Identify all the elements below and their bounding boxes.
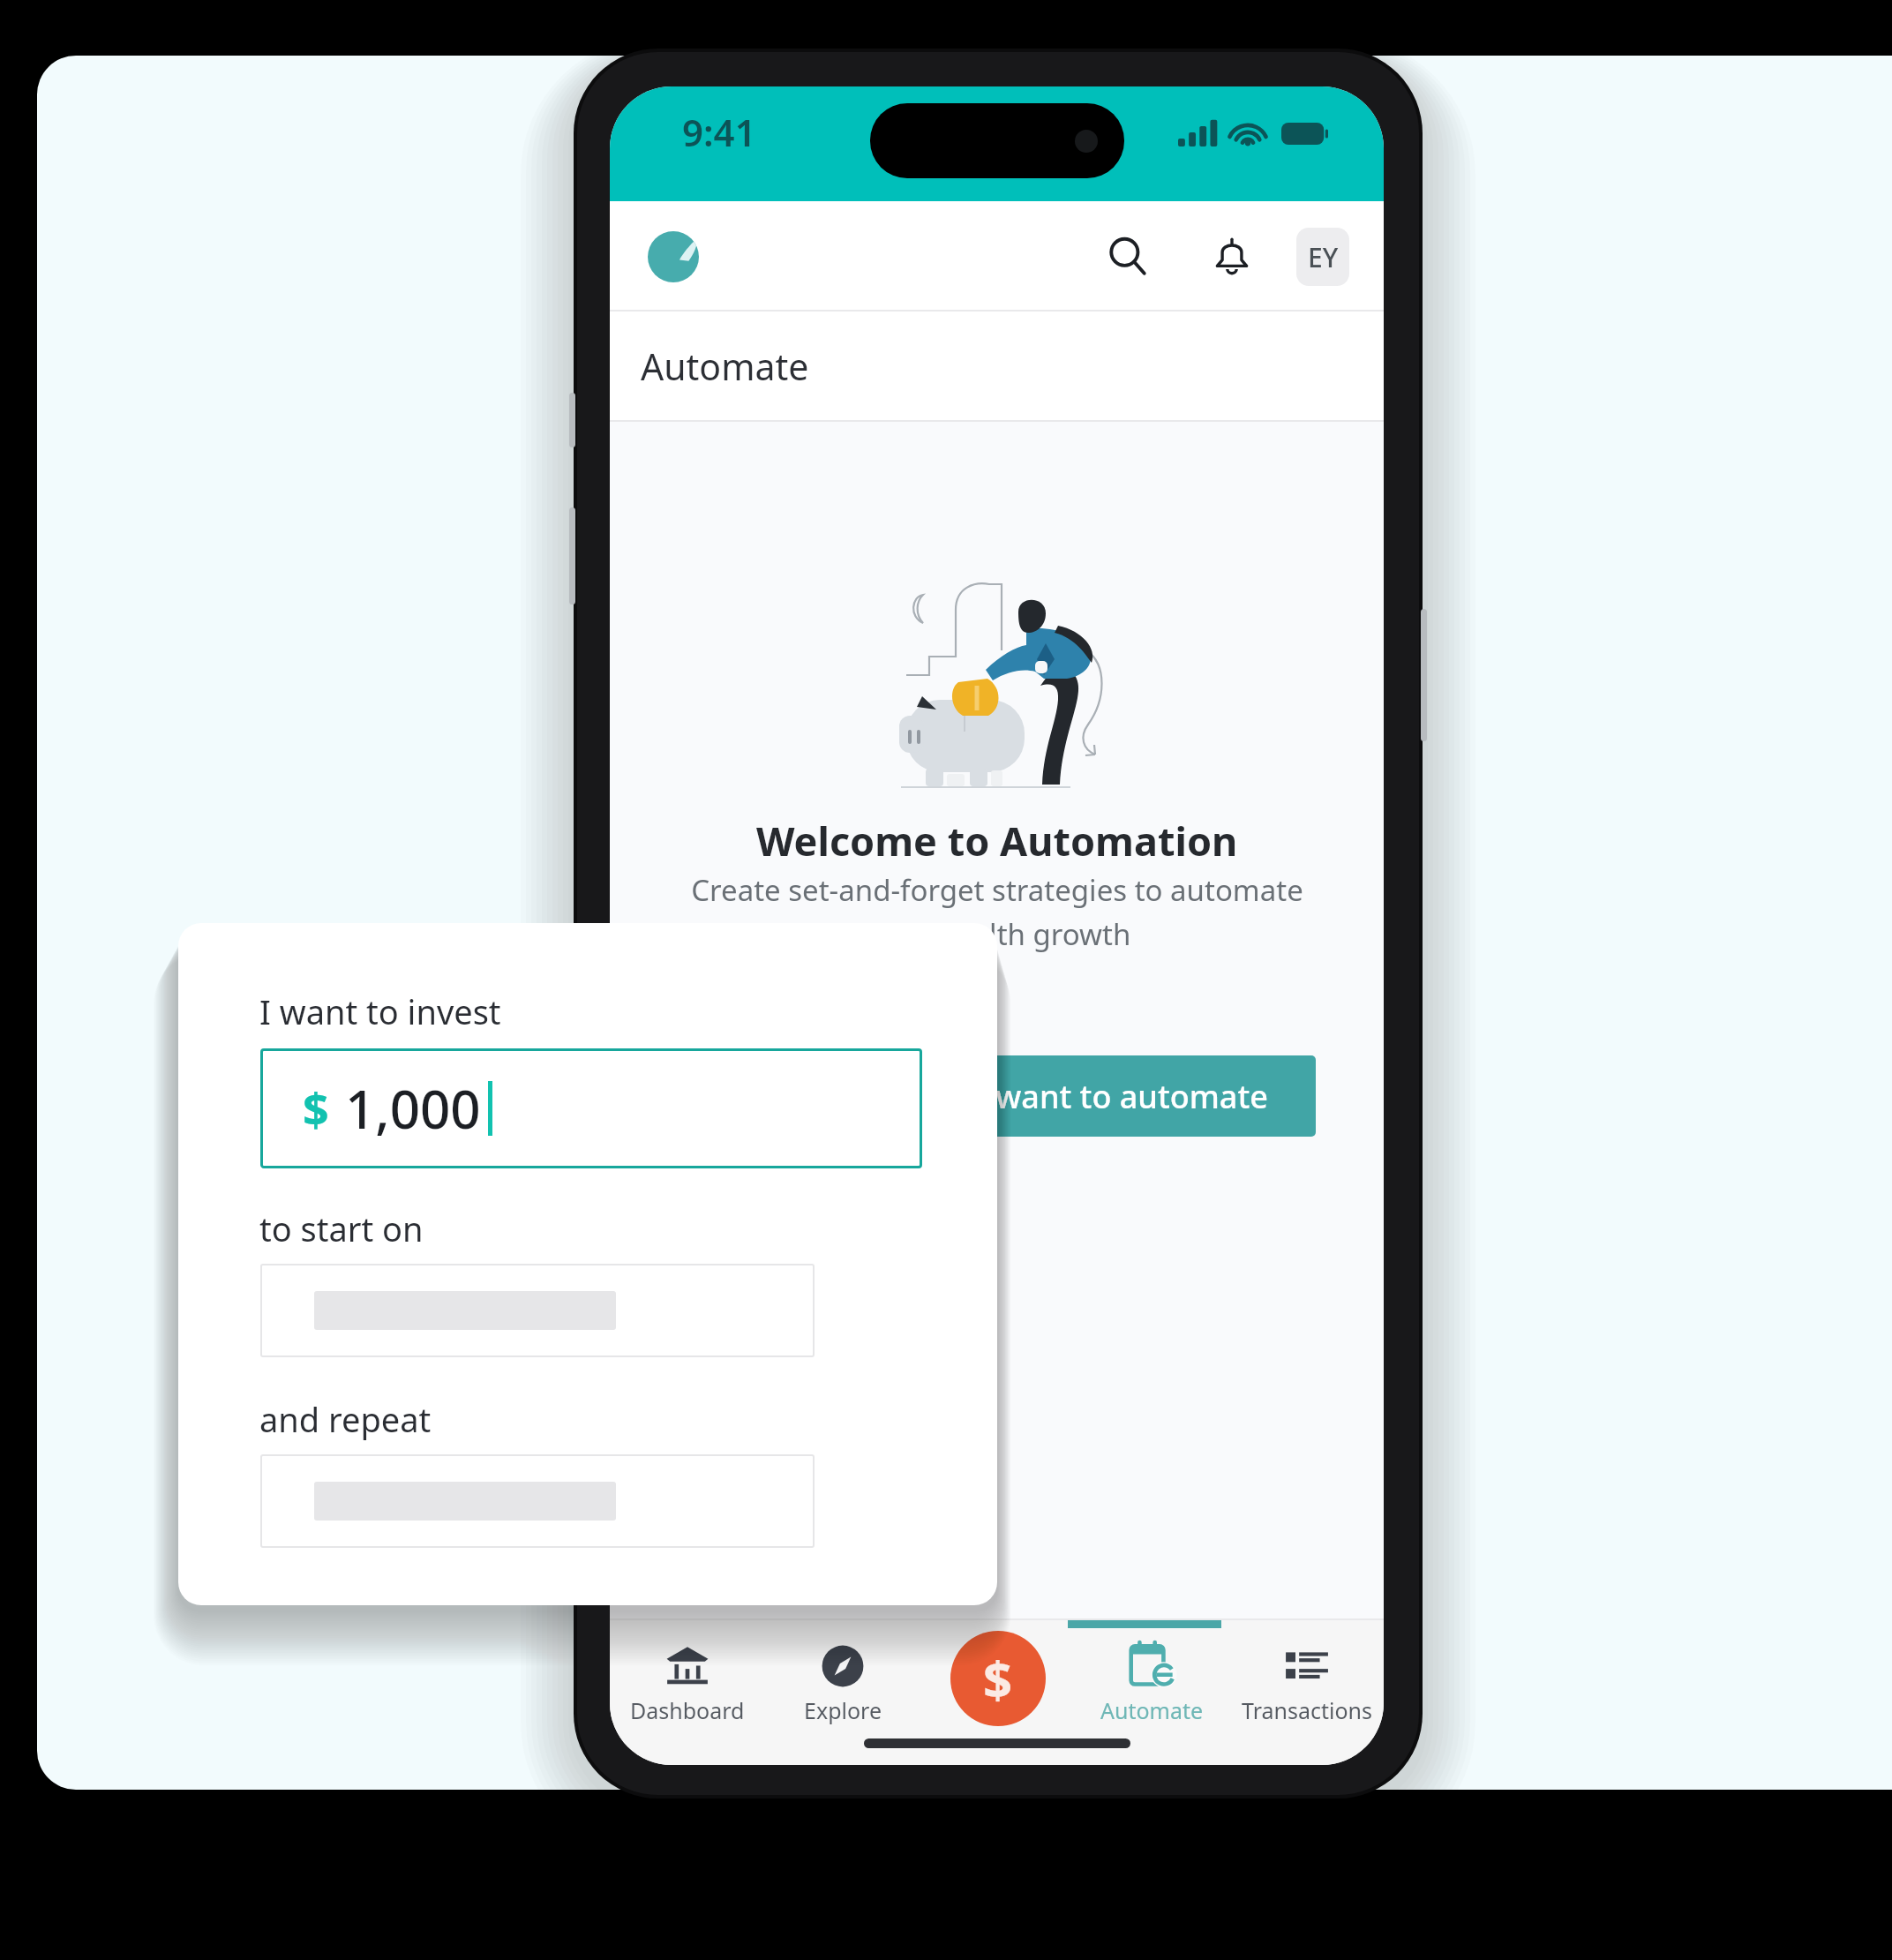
button[interactable]: Explore xyxy=(765,1618,920,1725)
button[interactable]: Invest xyxy=(950,1631,1046,1726)
staticText: Choose what you want to automate xyxy=(726,1075,1268,1118)
staticText: and repeat xyxy=(259,1396,432,1442)
button[interactable]: EY xyxy=(1296,228,1349,286)
button[interactable]: Choose what you want to automate xyxy=(679,1055,1316,1137)
staticText: I want to invest xyxy=(259,988,501,1034)
staticText: Automate xyxy=(641,342,809,391)
staticText: Dashboard xyxy=(630,1695,745,1725)
button[interactable]: Search xyxy=(1093,222,1162,291)
staticText: $ xyxy=(303,1078,329,1140)
button[interactable]: $ xyxy=(260,1048,922,1168)
button[interactable] xyxy=(260,1264,815,1357)
staticText: $ xyxy=(983,1644,1013,1714)
button[interactable]: Notifications xyxy=(1198,222,1266,291)
staticText: Transactions xyxy=(1242,1695,1372,1725)
button[interactable]: Transactions xyxy=(1229,1618,1384,1725)
staticText: Explore xyxy=(804,1695,882,1725)
button[interactable]: App logo xyxy=(648,231,699,282)
staticText: 1,000 xyxy=(345,1072,481,1145)
staticText: Automate xyxy=(1100,1695,1204,1725)
staticText: Create set-and-forget strategies to auto… xyxy=(691,870,1303,954)
button[interactable]: Dashboard xyxy=(610,1618,765,1725)
staticText: to start on xyxy=(259,1205,424,1251)
staticText: EY xyxy=(1308,239,1339,275)
staticText: Welcome to Automation xyxy=(756,814,1238,867)
staticText: 9:41 xyxy=(682,107,756,157)
button[interactable] xyxy=(260,1454,815,1548)
button[interactable]: Automate xyxy=(1075,1618,1229,1725)
